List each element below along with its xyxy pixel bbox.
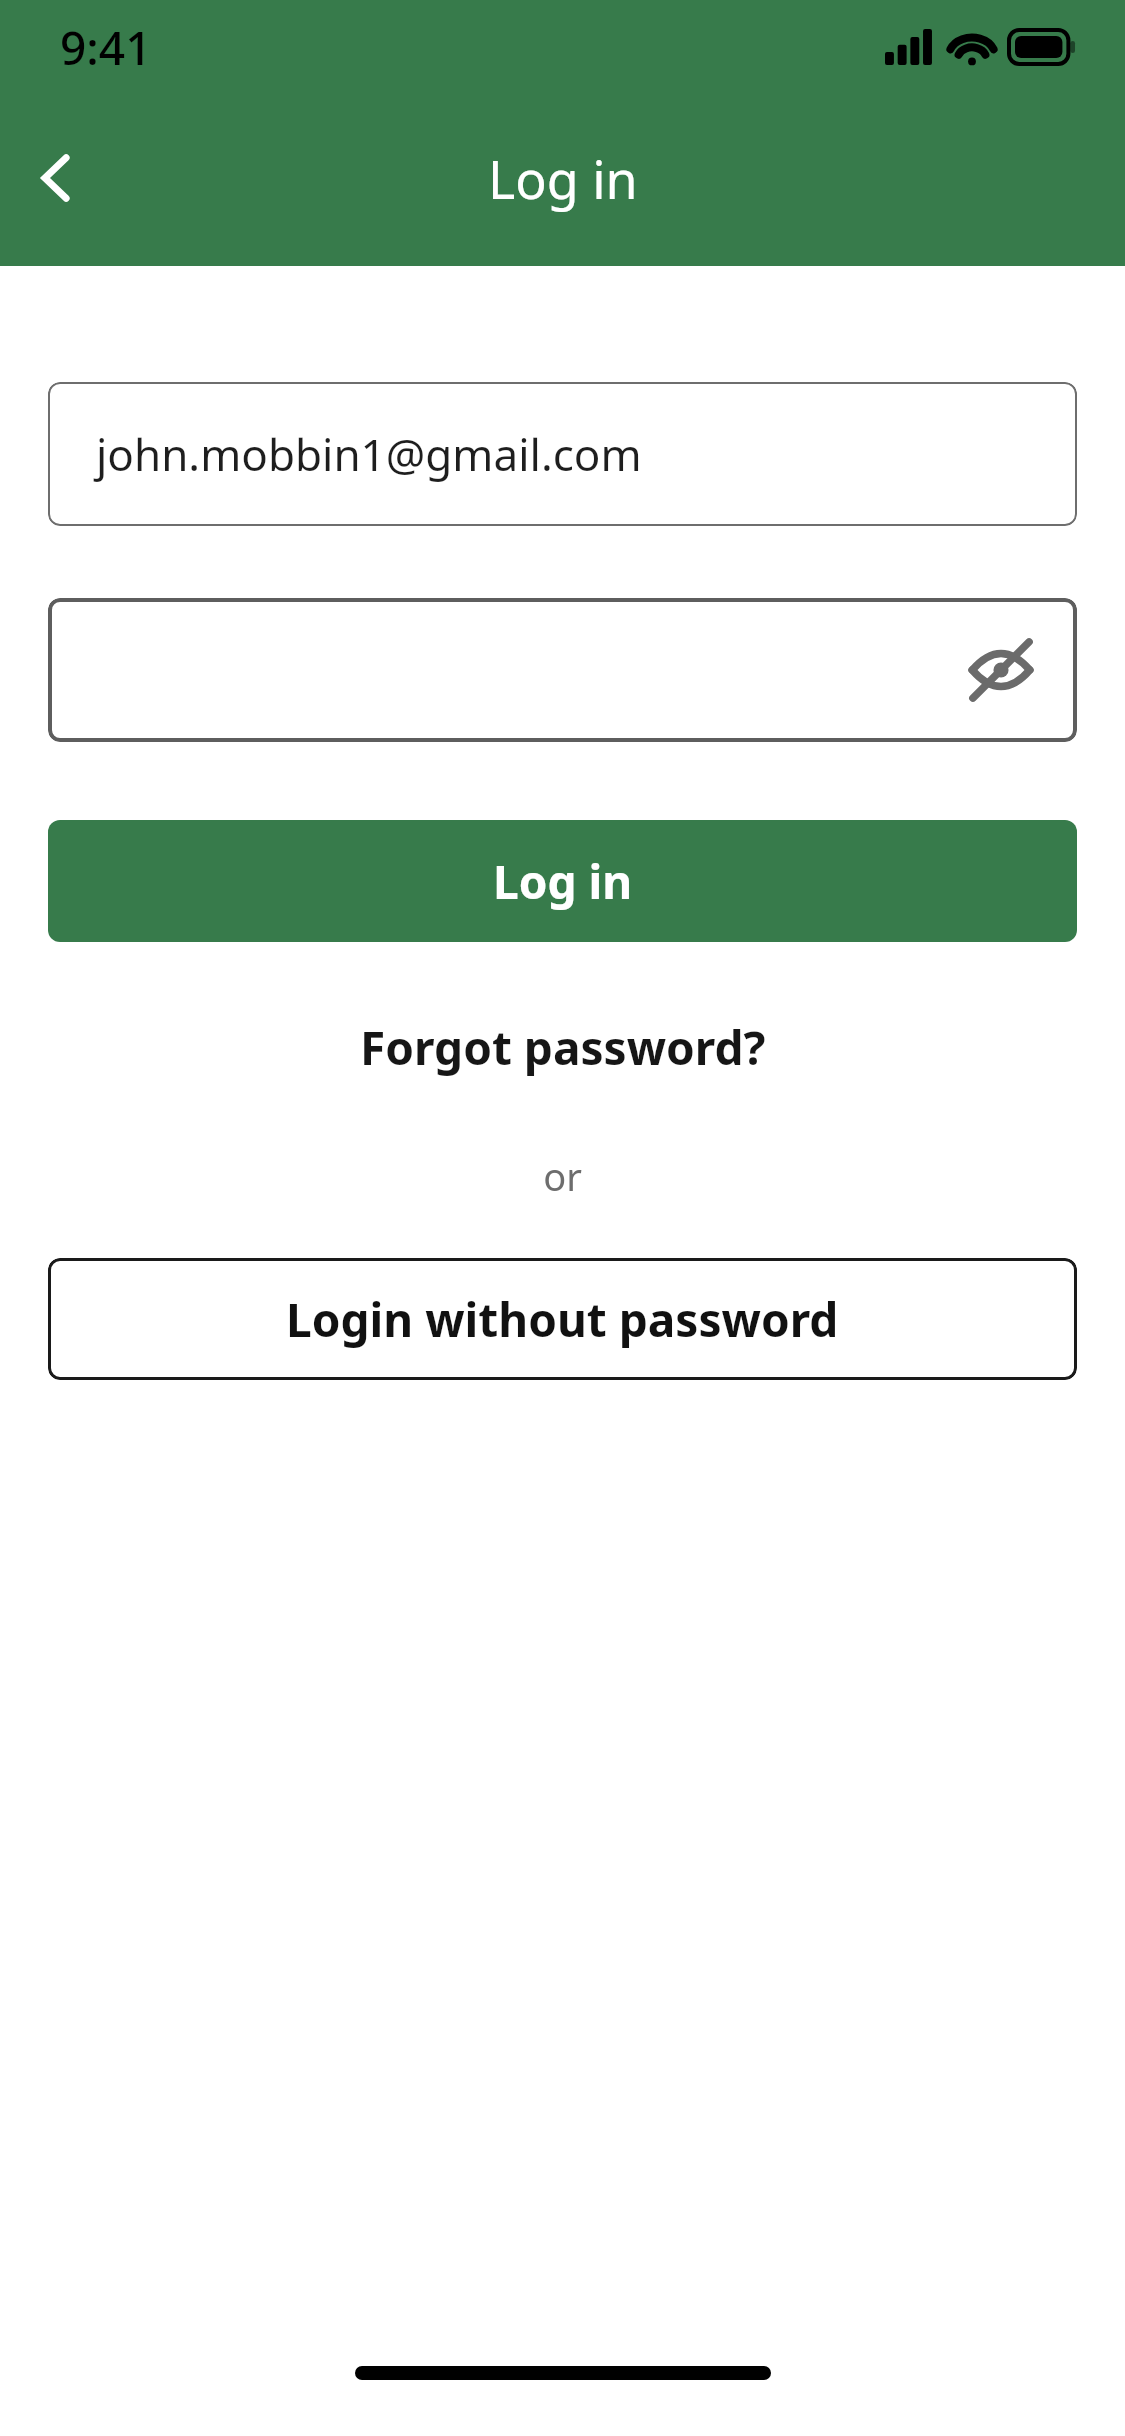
staticText: Forgot password? (360, 1016, 766, 1079)
staticText: Login without password (286, 1288, 839, 1351)
button[interactable]: Login without password (48, 1258, 1077, 1380)
button[interactable]: john.mobbin1@gmail.com (48, 382, 1077, 526)
staticText: john.mobbin1@gmail.com (96, 424, 642, 484)
button[interactable]: Show password (48, 598, 1077, 742)
staticText: Log in (488, 143, 638, 214)
staticText: or (543, 1150, 582, 1202)
button[interactable]: Forgot password? (48, 992, 1077, 1102)
button[interactable]: Log in (48, 820, 1077, 942)
staticText: Log in (493, 850, 633, 913)
button[interactable]: Back (8, 130, 104, 226)
button[interactable]: Show password (959, 628, 1043, 712)
staticText: 9:41 (60, 16, 152, 79)
